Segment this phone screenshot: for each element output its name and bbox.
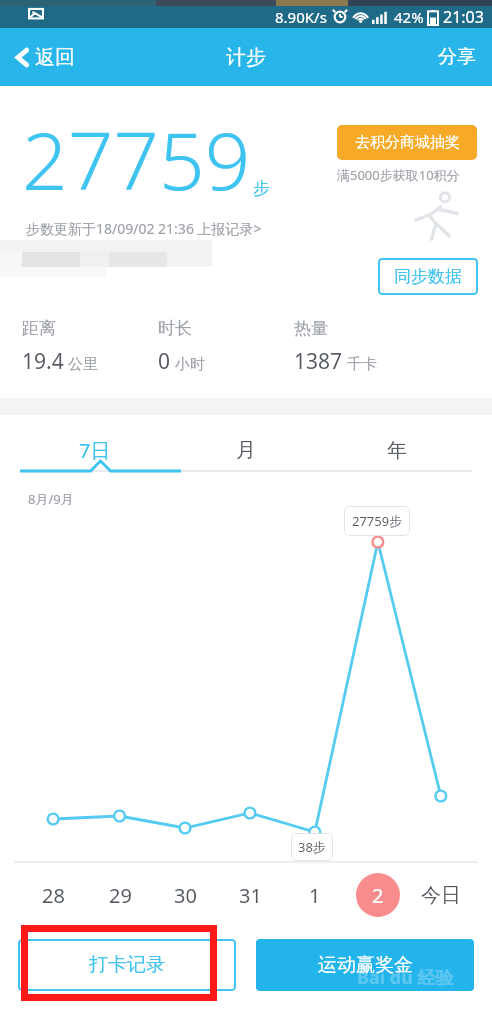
staticText: 满5000步获取10积分 <box>337 166 460 184</box>
button[interactable]: 29 <box>106 873 134 917</box>
staticText: 计步 <box>226 45 266 70</box>
button[interactable]: 同步数据 <box>378 258 478 295</box>
staticText: 31 <box>239 882 262 909</box>
button[interactable]: 月 <box>170 428 321 472</box>
staticText: 距离 <box>22 318 56 339</box>
button[interactable]: 31 <box>236 873 264 917</box>
staticText: 打卡记录 <box>89 953 165 977</box>
staticText: 8.90K/s <box>275 7 327 27</box>
staticText: 步 <box>253 178 270 199</box>
button[interactable]: 打卡记录 <box>18 939 236 991</box>
staticText: 1387 <box>294 347 343 376</box>
staticText: 27759 <box>22 104 251 213</box>
staticText: 27759步 <box>352 512 403 530</box>
staticText: 年 <box>387 438 407 463</box>
staticText: 运动赢奖金 <box>318 953 413 977</box>
button[interactable]: 运动赢奖金 <box>256 939 474 991</box>
staticText: 21:03 <box>443 6 484 28</box>
staticText: 返回 <box>35 45 75 70</box>
staticText: 热量 <box>294 318 328 339</box>
staticText: 29 <box>109 882 132 909</box>
button[interactable]: 返回 <box>0 28 91 86</box>
staticText: 今日 <box>421 883 461 908</box>
staticText: 千卡 <box>347 355 377 374</box>
button[interactable]: 去积分商城抽奖 <box>337 125 477 160</box>
button[interactable]: 年 <box>321 428 472 472</box>
staticText: 38步 <box>298 838 326 856</box>
staticText: 42% <box>394 7 424 27</box>
button[interactable]: 28 <box>39 873 67 917</box>
staticText: 8月/9月 <box>28 490 74 508</box>
staticText: 公里 <box>68 355 98 374</box>
staticText: 月 <box>236 438 256 463</box>
staticText: 同步数据 <box>394 266 462 287</box>
button[interactable]: 今日 <box>419 873 463 917</box>
staticText: 28 <box>42 882 65 909</box>
staticText: 30 <box>174 882 197 909</box>
staticText: Bai du 经验 <box>357 965 454 990</box>
button[interactable]: 30 <box>171 873 199 917</box>
staticText: 7日 <box>79 437 111 464</box>
staticText: 小时 <box>175 355 205 374</box>
staticText: 去积分商城抽奖 <box>355 133 460 152</box>
button[interactable]: 分享 <box>422 28 492 86</box>
button[interactable]: 1 <box>301 873 329 917</box>
button[interactable]: 2 <box>356 873 400 917</box>
button[interactable]: 7日 <box>20 428 170 472</box>
staticText: 时长 <box>158 318 192 339</box>
staticText: 0 <box>158 347 171 376</box>
staticText: 1 <box>309 882 321 909</box>
staticText: 分享 <box>438 45 476 69</box>
button[interactable]: 步数更新于18/09/02 21:36 上报记录> <box>26 219 262 238</box>
staticText: 19.4 <box>22 347 64 376</box>
staticText: 2 <box>372 882 384 909</box>
